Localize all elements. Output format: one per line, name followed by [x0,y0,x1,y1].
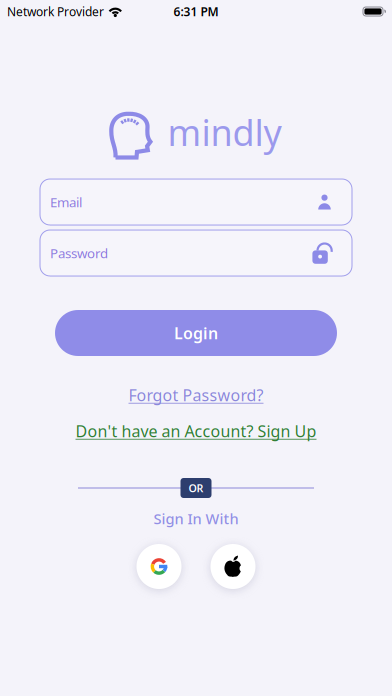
button[interactable]: Email [40,179,352,225]
staticText: Don't have an Account? Sign Up [75,420,316,442]
staticText: Network Provider [7,3,104,19]
button[interactable]: Sign In with Apple [210,544,255,589]
staticText: Password [50,244,108,262]
staticText: Sign In With [153,509,238,528]
staticText: Email [50,193,82,211]
staticText: Login [174,322,218,344]
staticText: Forgot Password? [128,384,263,406]
button[interactable]: Sign In with Google [136,544,181,589]
staticText: OR [188,481,203,495]
button[interactable]: Password [40,230,352,276]
button[interactable]: Login [55,310,337,356]
button[interactable]: Don't have an Account? Sign Up [75,420,316,442]
staticText: mindly [167,108,281,156]
button[interactable]: Forgot Password? [128,384,263,406]
staticText: 6:31 PM [173,3,218,19]
